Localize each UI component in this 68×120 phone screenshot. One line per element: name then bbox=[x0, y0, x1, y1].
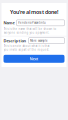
staticText: everyone sending you a payment. bbox=[3, 31, 49, 34]
staticText: This is a note about what it is that bbox=[3, 44, 49, 48]
staticText: you invite as part of the request. bbox=[3, 48, 49, 51]
staticText: Name bbox=[3, 20, 14, 25]
staticText: Description bbox=[3, 38, 26, 43]
staticText: You're almost done! bbox=[10, 8, 58, 16]
button[interactable]: Next bbox=[3, 55, 64, 63]
staticText: Venderia Pasantintu bbox=[18, 21, 46, 24]
button[interactable]: More example bbox=[28, 38, 64, 44]
staticText: More example bbox=[30, 39, 48, 42]
button[interactable]: Venderia Pasantintu bbox=[16, 20, 64, 26]
staticText: Next bbox=[29, 56, 38, 61]
staticText: This is the name that will be shown to bbox=[3, 27, 56, 31]
